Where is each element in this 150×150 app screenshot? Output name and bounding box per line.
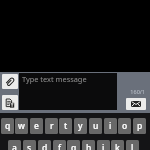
staticText: l: [131, 142, 134, 150]
staticText: h: [86, 142, 92, 150]
staticText: q: [5, 120, 11, 132]
staticText: 160/1: [119, 88, 145, 95]
button[interactable]: g: [67, 140, 80, 150]
button[interactable]: p: [133, 118, 146, 134]
button[interactable]: i: [104, 118, 117, 134]
button[interactable]: Type text message: [19, 73, 117, 110]
staticText: s: [27, 142, 32, 150]
button[interactable]: f: [53, 140, 66, 150]
staticText: o: [122, 120, 128, 132]
button[interactable]: r: [45, 118, 58, 134]
button[interactable]: a: [8, 140, 21, 150]
button[interactable]: q: [1, 118, 14, 134]
button[interactable]: Attach: [2, 74, 18, 89]
button[interactable]: k: [111, 140, 124, 150]
staticText: w: [18, 120, 25, 132]
staticText: k: [115, 142, 120, 150]
button[interactable]: t: [59, 118, 72, 134]
staticText: t: [64, 120, 68, 132]
staticText: p: [137, 120, 143, 132]
button[interactable]: d: [38, 140, 51, 150]
button[interactable]: s: [23, 140, 36, 150]
staticText: d: [42, 142, 48, 150]
button[interactable]: Insert template: [2, 95, 18, 110]
staticText: y: [78, 120, 83, 132]
button[interactable]: j: [97, 140, 110, 150]
button[interactable]: l: [126, 140, 139, 150]
staticText: f: [58, 142, 62, 150]
button[interactable]: e: [30, 118, 43, 134]
button[interactable]: o: [118, 118, 131, 134]
button[interactable]: w: [15, 118, 28, 134]
staticText: r: [50, 120, 54, 132]
button[interactable]: y: [74, 118, 87, 134]
staticText: j: [102, 142, 105, 150]
staticText: u: [93, 120, 99, 132]
staticText: a: [12, 142, 17, 150]
button[interactable]: Send: [126, 98, 146, 110]
staticText: g: [71, 142, 77, 150]
button[interactable]: h: [82, 140, 95, 150]
staticText: e: [34, 120, 39, 132]
staticText: i: [109, 120, 112, 132]
staticText: Type text message: [22, 74, 87, 84]
button[interactable]: u: [89, 118, 102, 134]
